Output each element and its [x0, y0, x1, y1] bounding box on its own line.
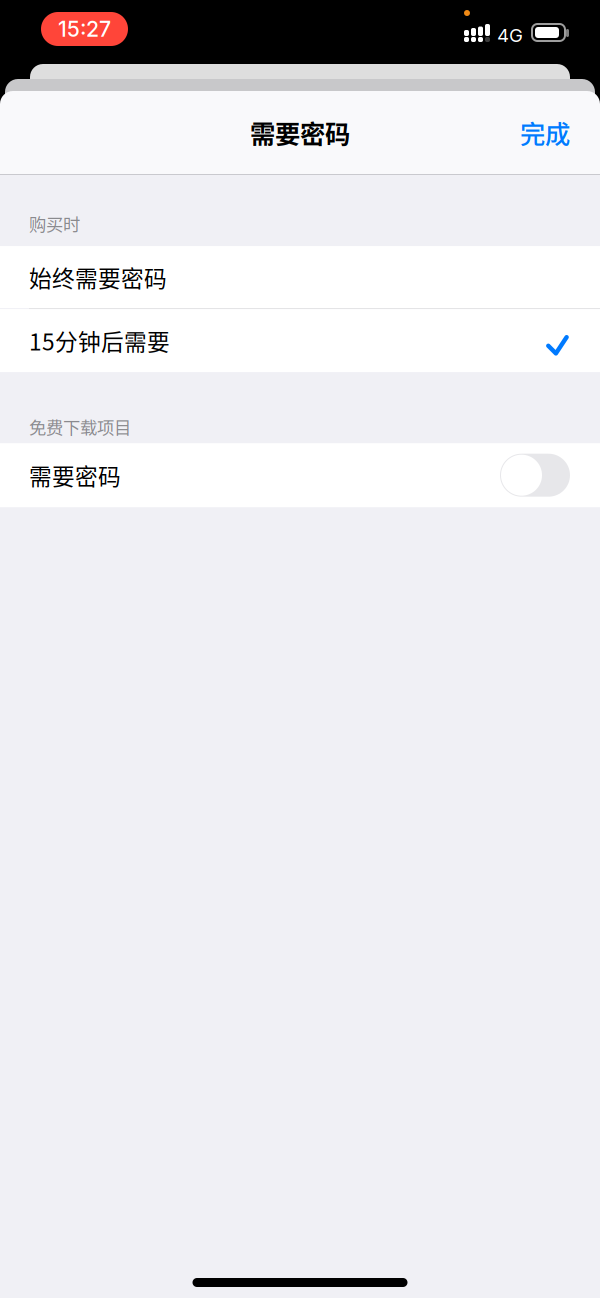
button[interactable]: 15分钟后需要 — [0, 309, 600, 372]
staticText: 购买时 — [29, 211, 80, 236]
staticText: 完成 — [520, 114, 570, 151]
staticText: 15:27 — [58, 16, 111, 42]
staticText: 免费下载项目 — [29, 414, 131, 439]
button[interactable]: 始终需要密码 — [0, 246, 600, 308]
button[interactable]: 需要密码 — [0, 443, 600, 507]
staticText: 始终需要密码 — [29, 261, 167, 293]
button[interactable]: 完成 — [505, 100, 585, 165]
staticText: 15分钟后需要 — [29, 324, 170, 357]
staticText: 4G — [497, 24, 523, 47]
staticText: 需要密码 — [29, 459, 121, 492]
staticText: 需要密码 — [250, 114, 350, 151]
